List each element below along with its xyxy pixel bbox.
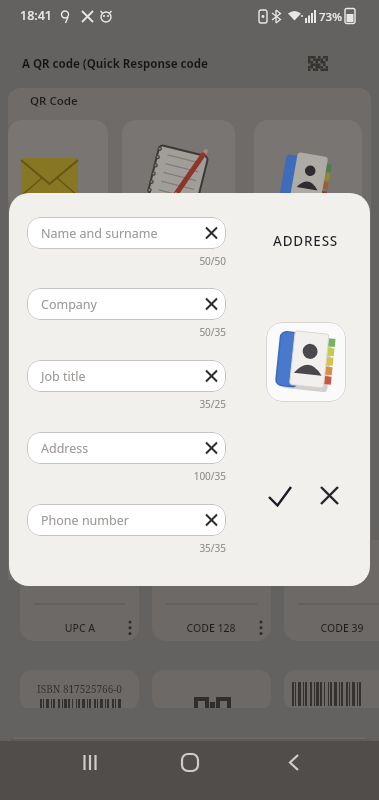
button[interactable]	[266, 322, 346, 402]
button[interactable]	[254, 120, 362, 210]
staticText: QR Code	[30, 93, 78, 109]
button[interactable]	[310, 476, 354, 520]
staticText: Company	[41, 296, 97, 313]
button[interactable]	[260, 741, 340, 800]
staticText: ISBN 817525766-0	[28, 682, 131, 696]
staticText: Phone number	[41, 512, 129, 529]
button[interactable]	[284, 670, 379, 710]
staticText: 73%	[319, 9, 342, 25]
button[interactable]	[122, 120, 235, 210]
button[interactable]: Job title	[27, 360, 226, 392]
button[interactable]	[152, 670, 271, 710]
staticText: 50/50	[27, 254, 226, 268]
button[interactable]: Name and surname	[27, 217, 226, 249]
staticText: ADDRESS	[273, 232, 339, 250]
staticText: Name and surname	[41, 225, 158, 242]
button[interactable]: Address	[27, 432, 226, 464]
button[interactable]	[284, 540, 379, 641]
staticText: Address	[41, 440, 89, 457]
button[interactable]: Phone number	[27, 504, 226, 536]
staticText: 50/35	[27, 325, 226, 339]
button[interactable]	[258, 476, 306, 520]
button[interactable]	[20, 670, 139, 710]
button[interactable]: Company	[27, 288, 226, 320]
staticText: UPC A	[44, 621, 116, 635]
staticText: 100/35	[27, 469, 226, 483]
staticText: A QR code (Quick Response code	[22, 56, 208, 72]
button[interactable]	[150, 741, 230, 800]
button[interactable]	[20, 540, 139, 641]
staticText: 35/25	[27, 397, 226, 411]
button[interactable]	[152, 540, 271, 641]
staticText: Job title	[41, 368, 86, 385]
staticText: CODE 39	[306, 621, 378, 635]
staticText: CODE 128	[172, 621, 250, 635]
staticText: 18:41	[20, 7, 53, 24]
button[interactable]	[8, 120, 108, 210]
button[interactable]	[60, 741, 150, 800]
staticText: 35/35	[27, 541, 226, 555]
